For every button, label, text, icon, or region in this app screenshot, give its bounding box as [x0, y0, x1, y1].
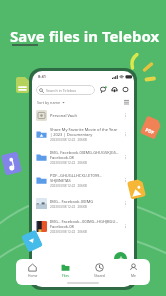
staticText: 2023/03/08 12:22 206KB [50, 184, 87, 188]
button[interactable]: Layout [122, 98, 130, 106]
staticText: Me [131, 273, 136, 277]
button[interactable]: More options [122, 177, 129, 184]
button[interactable]: Search in Telebox [36, 85, 95, 95]
button[interactable]: Personal Vault [32, 107, 134, 123]
button[interactable]: More options [122, 131, 129, 138]
button[interactable]: Files [49, 259, 82, 281]
button[interactable]: PDF--GHUGLLHCXU-ET099--SHJBNETAS [32, 169, 134, 192]
staticText: Save files in Telebox [10, 26, 160, 46]
staticText: 2023/03/08 12:22 206KB [50, 161, 87, 165]
staticText: Sort by name [37, 100, 60, 105]
button[interactable]: Share My Favorite Movie of the Year | 20… [32, 123, 134, 146]
staticText: Files [62, 273, 69, 277]
button[interactable]: Me [116, 259, 150, 281]
staticText: PDF--GHUGLLHCXU-ET099--SHJBNETAS [50, 173, 120, 183]
staticText: Share My Favorite Movie of the Year | 20… [50, 127, 120, 137]
button[interactable]: IMG- Facebook-00IMG-GHUG5KJG5--Facebook-… [32, 146, 134, 169]
button[interactable]: Notifications [98, 84, 109, 95]
button[interactable]: Shared [82, 259, 116, 281]
button[interactable]: More options [122, 154, 129, 161]
button[interactable]: Support [109, 84, 120, 95]
button[interactable]: IMG-- Facebook--00IMG--HGHJBGU--Facebook… [32, 215, 134, 238]
button[interactable]: IMG-- Facebook-00IMG [32, 192, 134, 215]
staticText: IMG-- Facebook-00IMG [50, 199, 94, 204]
button[interactable]: Sort by name [37, 100, 65, 105]
staticText: 8:41 [38, 74, 46, 79]
staticText: Shared [94, 273, 105, 277]
button[interactable]: Scan [120, 84, 131, 95]
staticText: 2023/03/08 12:22 206KB [50, 230, 87, 234]
button[interactable]: Home [16, 259, 49, 281]
staticText: 2023/03/08 12:22 206KB [50, 205, 87, 209]
button[interactable]: More options [122, 200, 129, 207]
button[interactable]: More options [122, 112, 129, 119]
staticText: Search in Telebox [46, 88, 77, 93]
button[interactable]: Add [114, 252, 127, 265]
button[interactable]: More options [122, 223, 129, 230]
staticText: PDF [145, 126, 155, 135]
staticText: 2023/03/08 12:22 206KB [50, 138, 87, 142]
staticText: Personal Vault [50, 113, 77, 118]
staticText: Home [28, 273, 38, 277]
staticText: IMG-- Facebook--00IMG--HGHJBGU--Facebook… [50, 219, 120, 229]
staticText: IMG- Facebook-00IMG-GHUG5KJG5--Facebook-… [50, 150, 120, 160]
